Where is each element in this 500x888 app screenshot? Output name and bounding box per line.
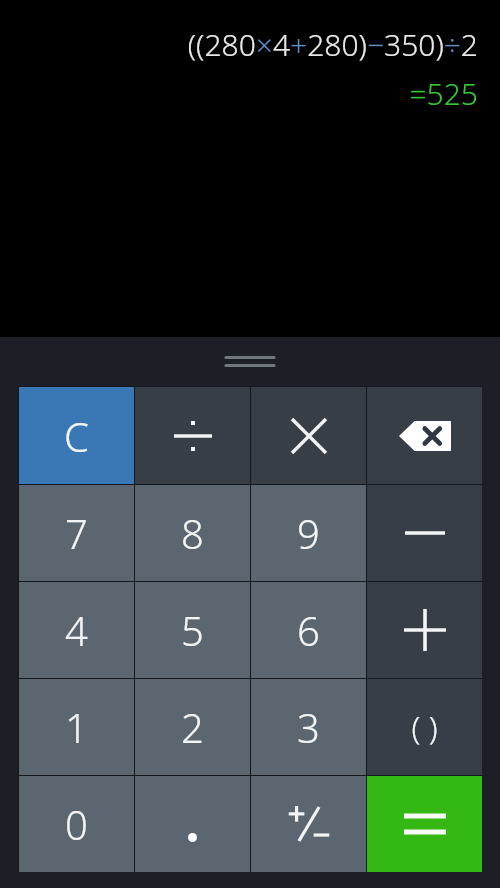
- button[interactable]: 8: [135, 485, 250, 581]
- button[interactable]: 5: [135, 582, 250, 678]
- button[interactable]: 4: [19, 582, 134, 678]
- button[interactable]: 2: [135, 679, 250, 775]
- staticText: 6: [297, 603, 320, 657]
- button[interactable]: 9: [251, 485, 366, 581]
- button[interactable]: 6: [251, 582, 366, 678]
- button[interactable]: Multiply: [251, 387, 366, 484]
- staticText: 4: [65, 603, 88, 657]
- button[interactable]: [0, 337, 500, 386]
- button[interactable]: 3: [251, 679, 366, 775]
- staticText: ( ): [411, 705, 438, 749]
- button[interactable]: Backspace: [367, 387, 482, 484]
- staticText: 3: [297, 700, 320, 754]
- staticText: 5: [181, 603, 204, 657]
- staticText: 9: [297, 506, 320, 560]
- staticText: 2: [181, 700, 204, 754]
- staticText: 0: [65, 797, 88, 851]
- staticText: 1: [65, 700, 88, 754]
- staticText: 8: [181, 506, 204, 560]
- button[interactable]: Equals: [367, 776, 482, 872]
- button[interactable]: Divide: [135, 387, 250, 484]
- button[interactable]: Plus minus sign: [251, 776, 366, 872]
- staticText: C: [64, 409, 89, 463]
- button[interactable]: Decimal point: [135, 776, 250, 872]
- button[interactable]: 1: [19, 679, 134, 775]
- staticText: =525: [409, 73, 478, 114]
- staticText: 7: [65, 506, 88, 560]
- staticText: ((280×4+280)−350)÷2: [187, 24, 478, 65]
- button[interactable]: C: [19, 387, 134, 484]
- button[interactable]: ( ): [367, 679, 482, 775]
- button[interactable]: 7: [19, 485, 134, 581]
- button[interactable]: 0: [19, 776, 134, 872]
- button[interactable]: Minus: [367, 485, 482, 581]
- button[interactable]: Plus: [367, 582, 482, 678]
